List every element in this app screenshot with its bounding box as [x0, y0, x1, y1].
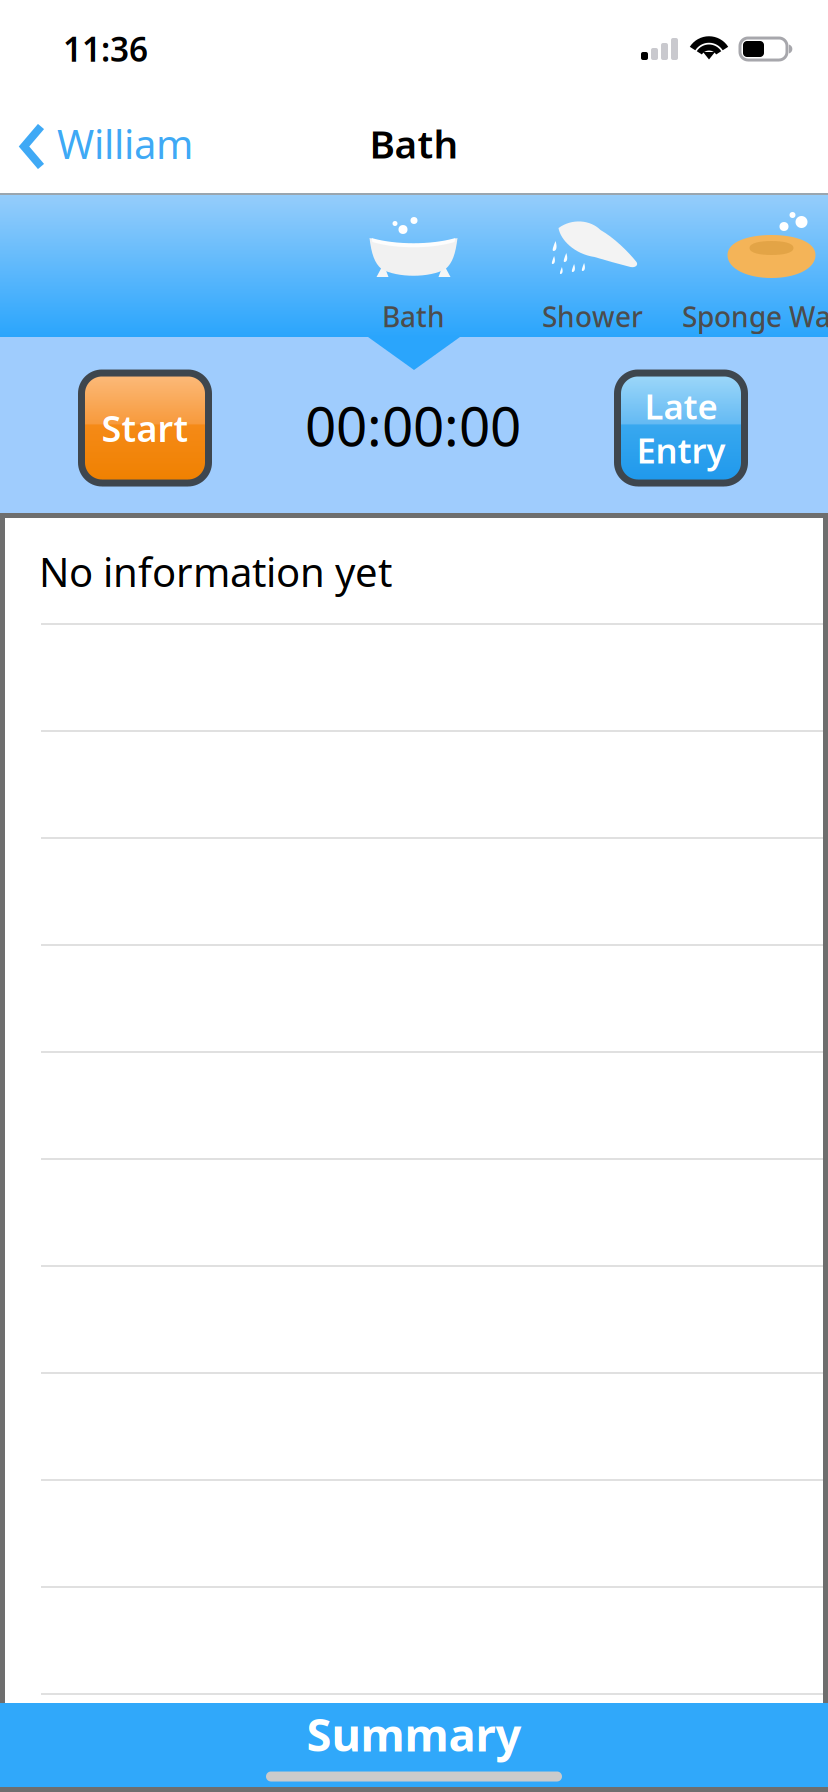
button[interactable]: William — [0, 94, 207, 193]
staticText: Bath — [369, 118, 458, 169]
staticText: Shower — [542, 298, 643, 335]
button[interactable]: Late — [614, 366, 748, 483]
staticText: Sponge Wash — [682, 298, 828, 335]
button[interactable]: Summary — [0, 1703, 828, 1765]
staticText: Summary — [306, 1704, 521, 1764]
button[interactable]: Sponge Wash — [682, 195, 828, 337]
staticText: 00:00:00 — [305, 389, 521, 461]
button[interactable]: Start — [78, 366, 212, 483]
staticText: Bath — [382, 298, 445, 335]
staticText: William — [57, 117, 193, 170]
staticText: No information yet — [39, 545, 392, 598]
button[interactable]: Shower — [503, 195, 682, 337]
staticText: Late — [644, 383, 717, 429]
button[interactable]: Bath — [324, 195, 503, 337]
staticText: Start — [101, 404, 188, 452]
staticText: 11:36 — [63, 27, 148, 71]
staticText: Entry — [636, 427, 725, 473]
